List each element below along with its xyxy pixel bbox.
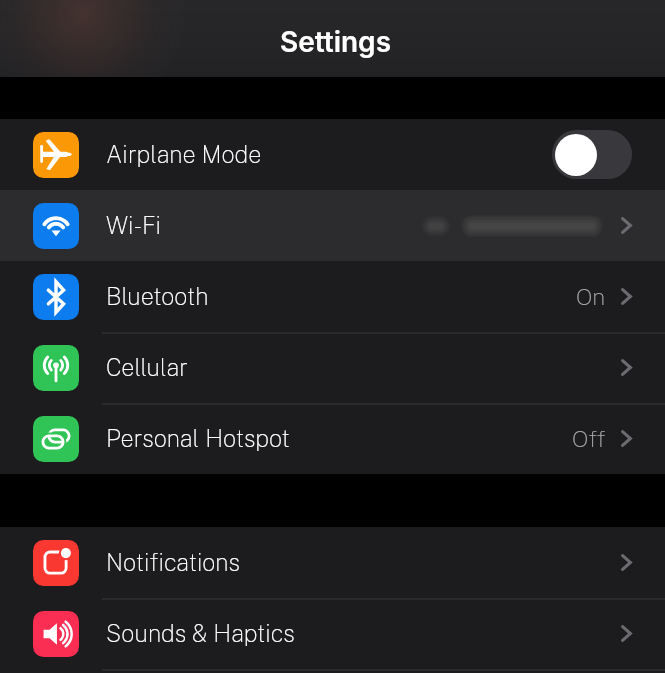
- button[interactable]: Sounds & Haptics: [0, 598, 665, 669]
- button[interactable]: Wi-Fi: [0, 190, 665, 261]
- staticText: Wi-Fi: [106, 212, 161, 240]
- button[interactable]: Bluetooth: [0, 261, 665, 332]
- staticText: Settings: [280, 25, 392, 59]
- staticText: Cellular: [106, 354, 188, 382]
- button[interactable]: Focus: [0, 669, 665, 673]
- staticText: Notifications: [106, 549, 240, 577]
- button[interactable]: Cellular: [0, 332, 665, 403]
- staticText: Sounds & Haptics: [106, 620, 295, 648]
- button[interactable]: Airplane Mode: [0, 119, 665, 190]
- staticText: Bluetooth: [106, 283, 209, 311]
- staticText: On: [576, 283, 606, 310]
- button[interactable]: Personal Hotspot: [0, 403, 665, 474]
- staticText: Off: [572, 425, 606, 452]
- button[interactable]: Notifications: [0, 527, 665, 598]
- staticText: Airplane Mode: [106, 141, 262, 169]
- button[interactable]: Airplane Mode, off: [552, 130, 632, 179]
- staticText: Personal Hotspot: [106, 425, 290, 453]
